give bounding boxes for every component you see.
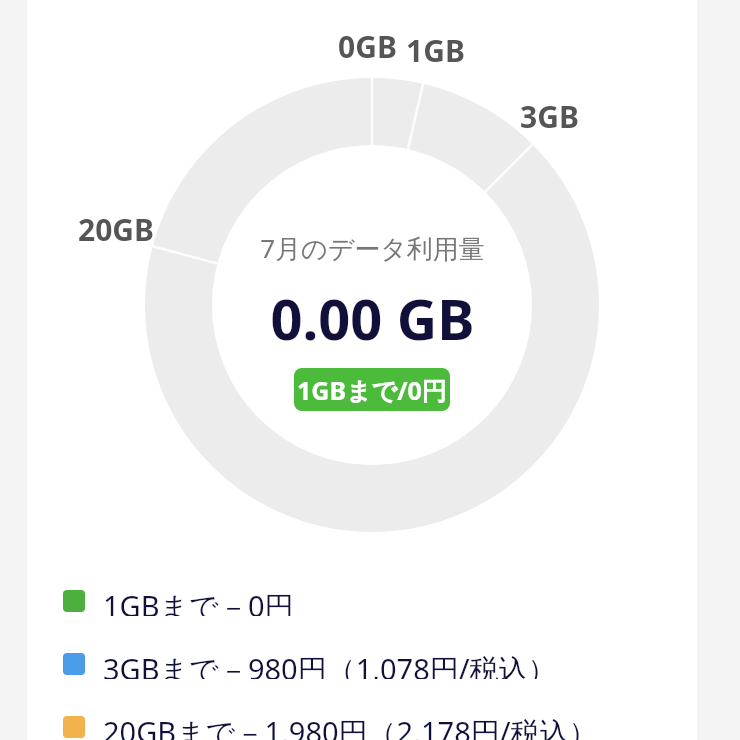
- button[interactable]: Plan color indicator: [63, 712, 598, 740]
- staticText: 1GBまで－0円: [103, 586, 294, 616]
- other: Plan color indicator: [63, 716, 85, 738]
- staticText: 3GB: [520, 96, 579, 137]
- other: Plan color indicator: [63, 590, 85, 612]
- staticText: 20GB: [78, 209, 154, 250]
- staticText: 20GBまで－1,980円（2,178円/税込）: [103, 712, 598, 740]
- staticText: 3GBまで－980円（1,078円/税込）: [103, 649, 557, 679]
- staticText: 0.00 GB: [270, 280, 475, 356]
- staticText: 0GB: [338, 26, 397, 67]
- staticText: 7月のデータ利用量: [260, 230, 485, 266]
- other: Plan color indicator: [63, 653, 85, 675]
- button[interactable]: Plan color indicator: [63, 586, 294, 616]
- staticText: 1GBまで/0円: [297, 373, 447, 407]
- staticText: 1GB: [406, 30, 465, 71]
- button[interactable]: Plan color indicator: [63, 649, 557, 679]
- button[interactable]: 1GBまで/0円: [294, 368, 450, 411]
